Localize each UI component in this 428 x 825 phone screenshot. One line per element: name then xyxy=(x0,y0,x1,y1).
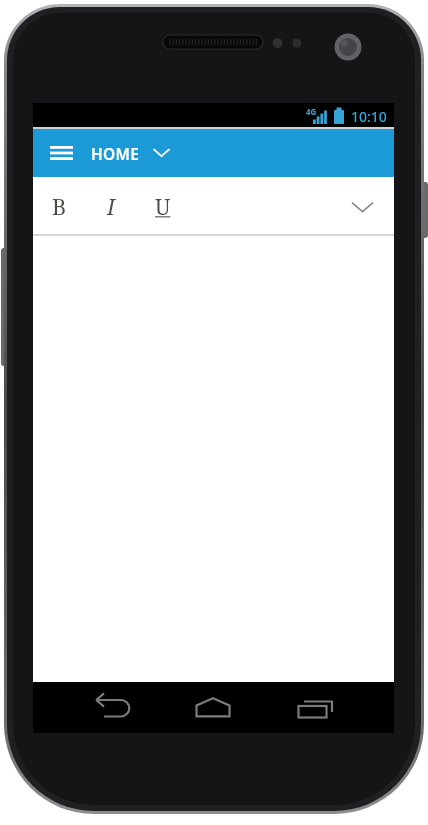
staticText: B xyxy=(52,192,67,221)
button[interactable] xyxy=(50,129,73,177)
staticText: U xyxy=(155,192,171,221)
staticText: I xyxy=(107,192,115,221)
staticText: HOME xyxy=(91,143,140,164)
staticText: 10:10 xyxy=(351,107,387,126)
button[interactable] xyxy=(288,682,338,733)
button[interactable] xyxy=(184,682,234,733)
staticText: 4G xyxy=(306,106,317,117)
button[interactable] xyxy=(330,177,394,236)
button[interactable]: U xyxy=(137,177,189,236)
button[interactable] xyxy=(87,682,137,733)
button[interactable]: I xyxy=(85,177,137,236)
button[interactable]: B xyxy=(33,177,85,236)
button[interactable]: HOME xyxy=(91,129,179,177)
